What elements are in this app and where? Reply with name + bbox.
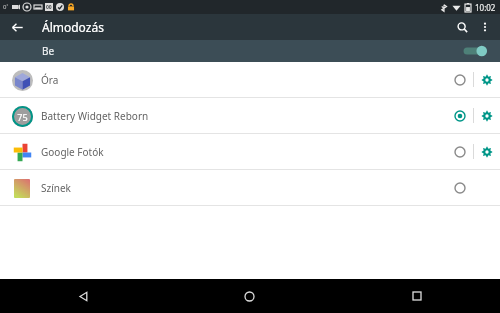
- staticText: 75: [17, 111, 28, 123]
- button[interactable]: Settings for Battery Widget Reborn: [474, 103, 500, 129]
- staticText: Óra: [41, 73, 59, 87]
- button[interactable]: Recent apps: [333, 279, 500, 313]
- staticText: Álmodozás: [42, 19, 104, 35]
- button[interactable]: More options: [474, 16, 496, 38]
- staticText: Google Fotók: [41, 145, 104, 159]
- staticText: Színek: [41, 181, 71, 195]
- button[interactable]: Back: [6, 16, 28, 38]
- staticText: 00: [46, 4, 52, 11]
- button[interactable]: Home: [166, 279, 333, 313]
- button[interactable]: Google Fotók: [0, 134, 500, 169]
- button[interactable]: Settings for Google Fotók: [474, 139, 500, 165]
- button[interactable]: Színek: [0, 170, 500, 205]
- staticText: Battery Widget Reborn: [41, 109, 149, 123]
- button[interactable]: Select Óra: [447, 67, 473, 93]
- button[interactable]: Settings for Óra: [474, 67, 500, 93]
- button[interactable]: Select Színek: [447, 175, 473, 201]
- button[interactable]: Back: [0, 279, 166, 313]
- button[interactable]: Search: [450, 15, 474, 39]
- button[interactable]: Select Google Fotók: [447, 139, 473, 165]
- staticText: Be: [42, 44, 55, 58]
- button[interactable]: Óra: [0, 62, 500, 97]
- staticText: 10:02: [475, 2, 496, 13]
- staticText: 0˚: [3, 3, 9, 11]
- button[interactable]: Be: [0, 40, 500, 62]
- button[interactable]: Select Battery Widget Reborn: [447, 103, 473, 129]
- button[interactable]: 75: [0, 98, 500, 133]
